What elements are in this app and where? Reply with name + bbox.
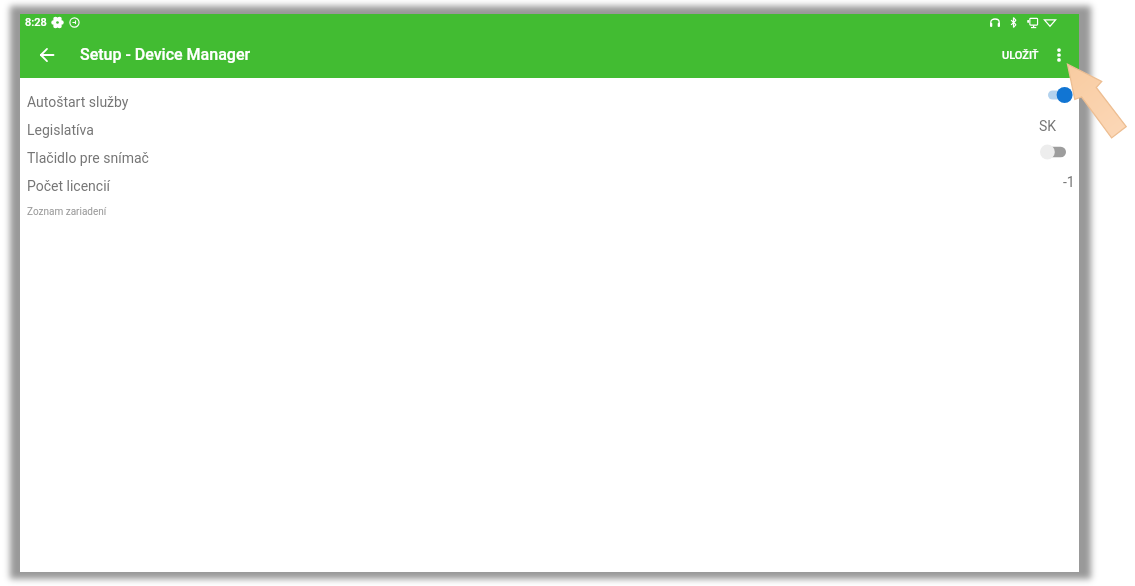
button[interactable]: Back xyxy=(33,41,60,68)
staticText: -1 xyxy=(1063,174,1075,190)
button[interactable]: Legislatíva xyxy=(20,116,1079,144)
button[interactable]: ULOŽIŤ xyxy=(991,42,1043,67)
staticText: 8:28 xyxy=(25,16,47,29)
staticText: Autoštart služby xyxy=(27,94,129,110)
staticText: Tlačidlo pre snímač xyxy=(27,150,149,166)
staticText: Počet licencií xyxy=(27,178,111,194)
staticText: Zoznam zariadení xyxy=(27,206,107,218)
button[interactable]: Počet licencií xyxy=(20,172,1079,200)
button[interactable]: Tlačidlo pre snímač xyxy=(20,144,1079,172)
staticText: SK xyxy=(1039,118,1057,134)
button[interactable]: More options xyxy=(1046,42,1072,68)
button[interactable]: Autoštart služby xyxy=(20,88,1079,116)
staticText: ULOŽIŤ xyxy=(1002,49,1039,62)
staticText: Setup - Device Manager xyxy=(80,45,251,64)
staticText: Legislatíva xyxy=(27,122,94,138)
button[interactable]: Zoznam zariadení xyxy=(20,200,1079,224)
